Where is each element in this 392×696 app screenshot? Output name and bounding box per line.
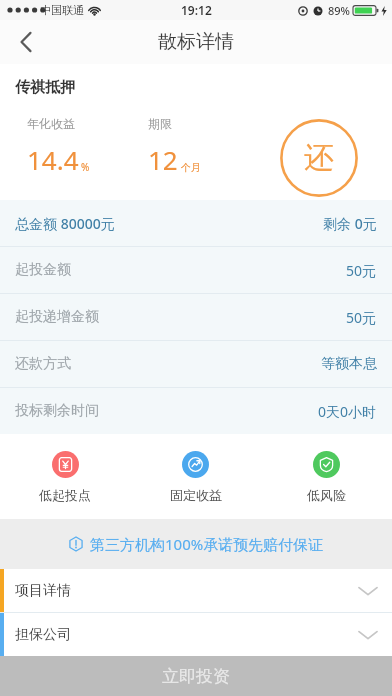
staticText: 12 xyxy=(148,142,178,177)
button[interactable]: 第三方机构100%承诺预先赔付保证 xyxy=(0,519,392,569)
staticText: 项目详情 xyxy=(15,582,71,600)
staticText: 年化收益 xyxy=(27,116,75,131)
staticText: 89% xyxy=(328,3,350,18)
staticText: 中国联通 xyxy=(40,3,84,17)
staticText: 起投递增金额 xyxy=(15,308,99,326)
button[interactable]: 起投金额 xyxy=(0,247,392,293)
button[interactable]: 固定收益 xyxy=(130,434,261,519)
staticText: 散标详情 xyxy=(158,30,234,54)
button[interactable]: 投标剩余时间 xyxy=(0,388,392,434)
staticText: 等额本息 xyxy=(321,355,377,373)
staticText: 传祺抵押 xyxy=(15,78,75,97)
staticText: 总金额 80000元 xyxy=(15,214,115,233)
staticText: 担保公司 xyxy=(15,626,71,644)
button[interactable]: Back xyxy=(0,20,52,64)
staticText: 投标剩余时间 xyxy=(15,402,99,420)
staticText: 低起投点 xyxy=(39,487,91,503)
button[interactable]: 低起投点 xyxy=(0,434,130,519)
button[interactable]: 总金额 80000元 xyxy=(0,200,392,246)
staticText: 起投金额 xyxy=(15,261,71,279)
staticText: 50元 xyxy=(346,261,377,280)
staticText: 14.4 xyxy=(27,142,79,177)
button[interactable]: 项目详情 xyxy=(0,569,392,612)
button[interactable]: 低风险 xyxy=(261,434,392,519)
staticText: 0天0小时 xyxy=(318,402,377,421)
button[interactable]: 还款方式 xyxy=(0,341,392,387)
staticText: 固定收益 xyxy=(170,487,222,503)
button[interactable]: 起投递增金额 xyxy=(0,294,392,340)
staticText: 剩余 0元 xyxy=(323,214,377,233)
staticText: 期限 xyxy=(148,116,172,131)
button[interactable]: 担保公司 xyxy=(0,613,392,656)
staticText: % xyxy=(81,160,90,174)
staticText: 立即投资 xyxy=(162,666,230,687)
staticText: 低风险 xyxy=(307,487,346,503)
button[interactable]: 立即投资 xyxy=(0,656,392,696)
staticText: 还 xyxy=(304,139,334,177)
staticText: 还款方式 xyxy=(15,355,71,373)
staticText: 第三方机构100%承诺预先赔付保证 xyxy=(90,534,324,554)
staticText: 19:12 xyxy=(181,2,212,18)
staticText: 个月 xyxy=(181,161,201,174)
staticText: 50元 xyxy=(346,308,377,327)
